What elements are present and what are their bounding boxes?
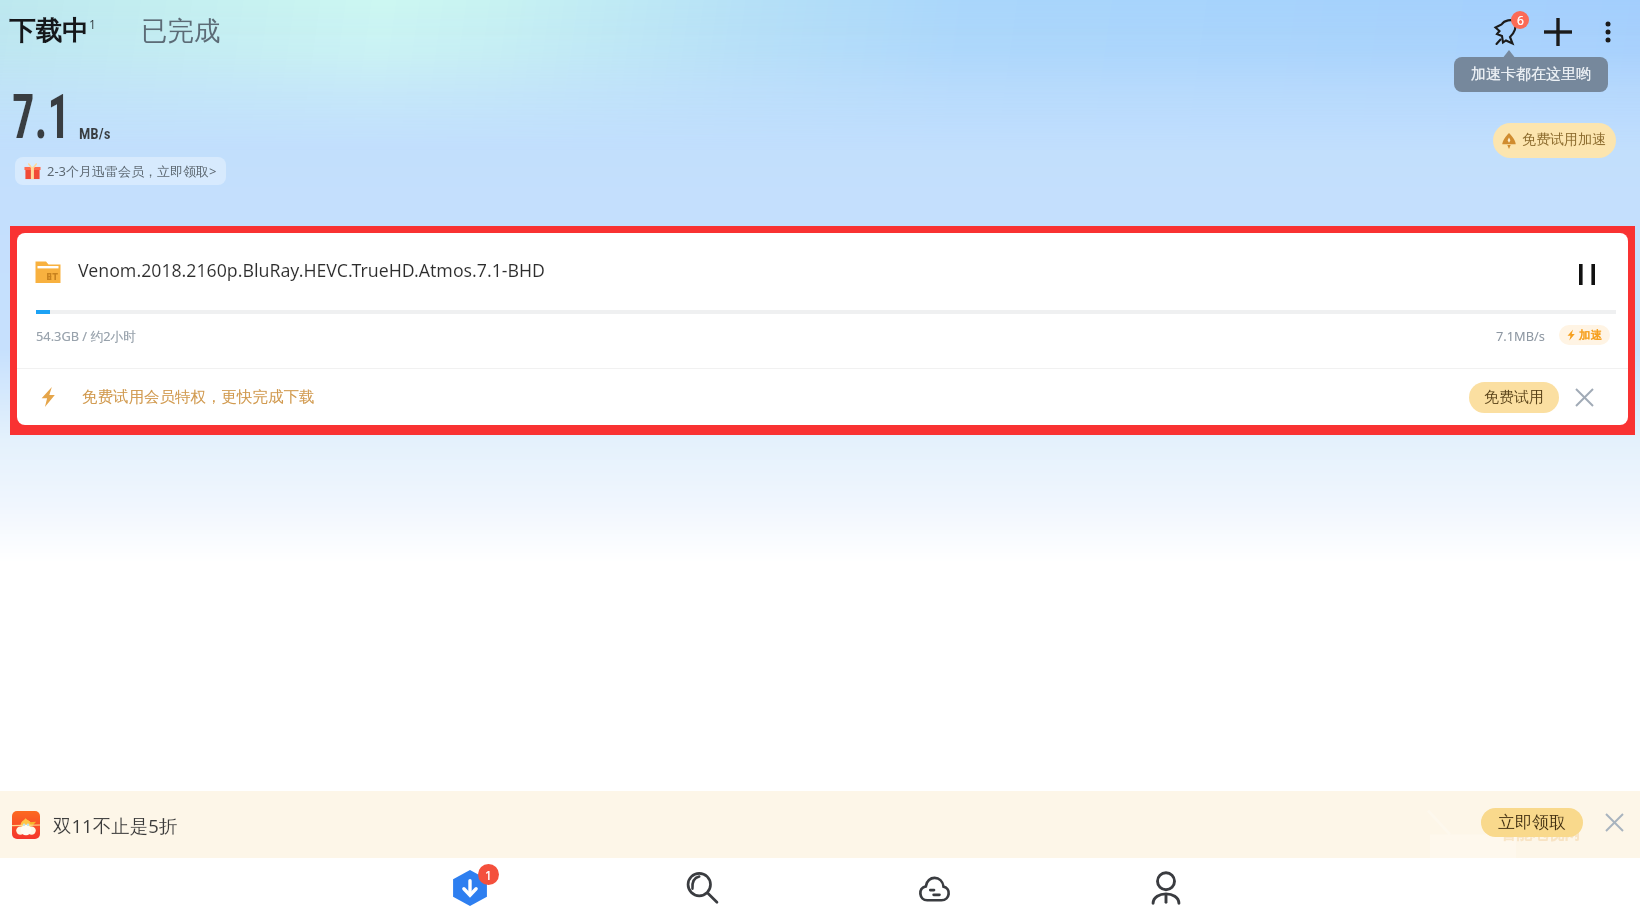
button[interactable]: Search [586,858,818,917]
staticText: 加速 [1579,328,1602,342]
button[interactable]: Venom.2018.2160p.BluRay.HEVC.TrueHD.Atmo… [17,233,1628,368]
staticText: 免费试用 [1484,388,1544,407]
button[interactable]: Cloud [818,858,1050,917]
button[interactable]: 免费试用加速 [1493,123,1616,158]
staticText: 加速卡都在这里哟 [1471,65,1591,84]
button[interactable]: Pause download [1567,254,1607,294]
button[interactable]: Profile [1050,858,1282,917]
staticText: Venom.2018.2160p.BluRay.HEVC.TrueHD.Atmo… [78,258,546,282]
button[interactable]: 立即领取 [1481,808,1583,837]
staticText: 7.1MB/s [1496,327,1545,344]
button[interactable]: Acceleration cards [1480,6,1532,58]
button[interactable]: 免费试用 [1469,382,1559,413]
staticText: 1 [89,16,96,32]
button[interactable]: Close banner [1599,810,1629,840]
staticText: 立即领取 [1498,812,1566,833]
button[interactable]: Dismiss promotion [1567,380,1601,414]
staticText: 7.1 [12,81,70,152]
staticText: 免费试用会员特权，更快完成下载 [82,387,315,407]
button[interactable]: 免费试用会员特权，更快完成下载 [17,369,1628,425]
button[interactable]: 加速 [1559,325,1610,345]
button[interactable]: More options [1584,8,1632,56]
staticText: 6 [1517,12,1524,28]
staticText: 54.3GB / 约2小时 [36,327,137,344]
staticText: 智能电视网 [1500,824,1580,844]
button[interactable]: Add download [1532,6,1584,58]
staticText: 双11不止是5折 [53,813,178,838]
button[interactable]: Downloads [354,858,586,917]
button[interactable]: 加速卡都在这里哟 [1454,57,1608,92]
staticText: 已完成 [141,14,221,47]
staticText: MB/s [79,125,111,143]
button[interactable]: 已完成 [138,12,224,49]
staticText: 下载中 [9,14,89,47]
staticText: 免费试用加速 [1522,131,1606,149]
staticText: 2-3个月迅雷会员，立即领取> [47,162,217,180]
button[interactable]: 2-3个月迅雷会员，立即领取> [15,157,226,185]
staticText: 1 [485,867,492,883]
button[interactable]: 下载中 [6,12,99,49]
